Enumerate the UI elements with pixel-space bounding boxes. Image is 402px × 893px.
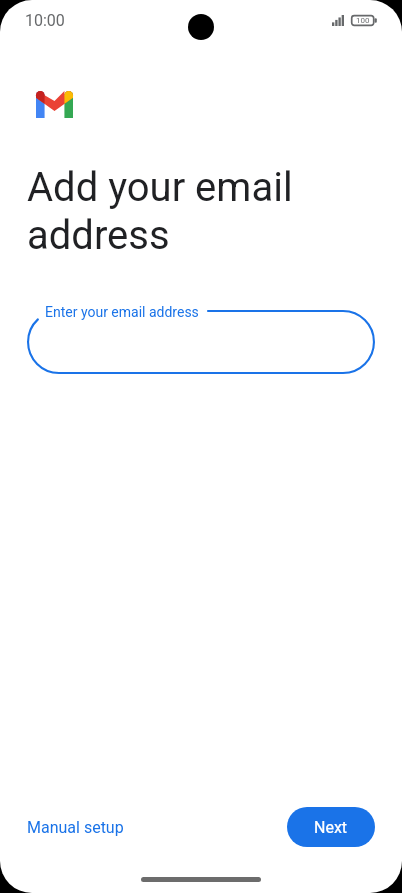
button[interactable]: Enter your email address [27,310,375,374]
staticText: Manual setup [27,818,124,837]
staticText: 10:00 [25,11,65,30]
staticText: Next [314,818,348,837]
staticText: 100 [356,16,370,25]
button[interactable]: Manual setup [27,810,124,845]
staticText: Enter your email address [45,304,199,320]
button[interactable]: Next [287,807,375,847]
staticText: Add your email address [27,164,293,258]
